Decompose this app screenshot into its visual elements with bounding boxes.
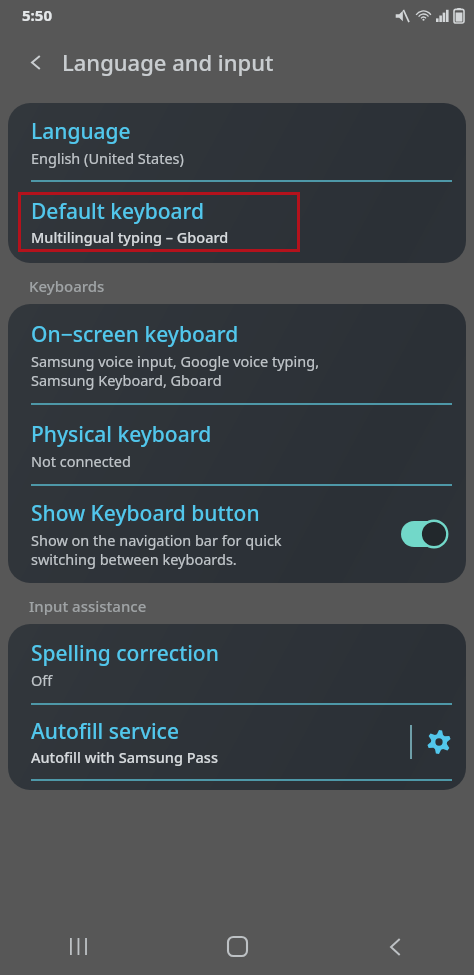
button[interactable]: Back xyxy=(316,918,474,975)
staticText: English (United States) xyxy=(31,148,184,168)
button[interactable]: Home xyxy=(158,918,316,975)
staticText: Show Keyboard button xyxy=(31,499,260,528)
staticText: Autofill service xyxy=(31,717,179,746)
button[interactable]: Back xyxy=(19,45,53,79)
button[interactable]: Physical keyboard xyxy=(8,420,466,471)
staticText: Language xyxy=(31,117,131,146)
button[interactable]: Show Keyboard button xyxy=(8,499,466,569)
button[interactable]: Recent apps xyxy=(0,918,158,975)
staticText: Input assistance xyxy=(29,596,147,616)
staticText: Samsung voice input, Google voice typing… xyxy=(31,351,320,390)
button[interactable]: Spelling correction xyxy=(8,639,466,690)
staticText: Not connected xyxy=(31,451,131,471)
button[interactable]: Default keyboard xyxy=(8,192,466,252)
button[interactable]: On−screen keyboard xyxy=(8,320,466,390)
staticText: 5:50 xyxy=(22,5,52,25)
button[interactable]: Autofill service settings xyxy=(412,717,466,767)
staticText: Show on the navigation bar for quick swi… xyxy=(31,530,282,569)
staticText: On−screen keyboard xyxy=(31,320,239,349)
button[interactable]: Autofill service xyxy=(8,717,410,767)
staticText: Autofill with Samsung Pass xyxy=(31,747,218,767)
staticText: Keyboards xyxy=(29,276,105,296)
staticText: Spelling correction xyxy=(31,639,219,668)
button[interactable]: Show Keyboard button toggle xyxy=(396,515,452,553)
staticText: Physical keyboard xyxy=(31,420,212,449)
staticText: Off xyxy=(31,670,53,690)
staticText: Default keyboard xyxy=(31,197,205,226)
staticText: Language and input xyxy=(62,47,274,77)
button[interactable]: Language xyxy=(8,117,466,168)
staticText: Multilingual typing – Gboard xyxy=(31,227,229,247)
